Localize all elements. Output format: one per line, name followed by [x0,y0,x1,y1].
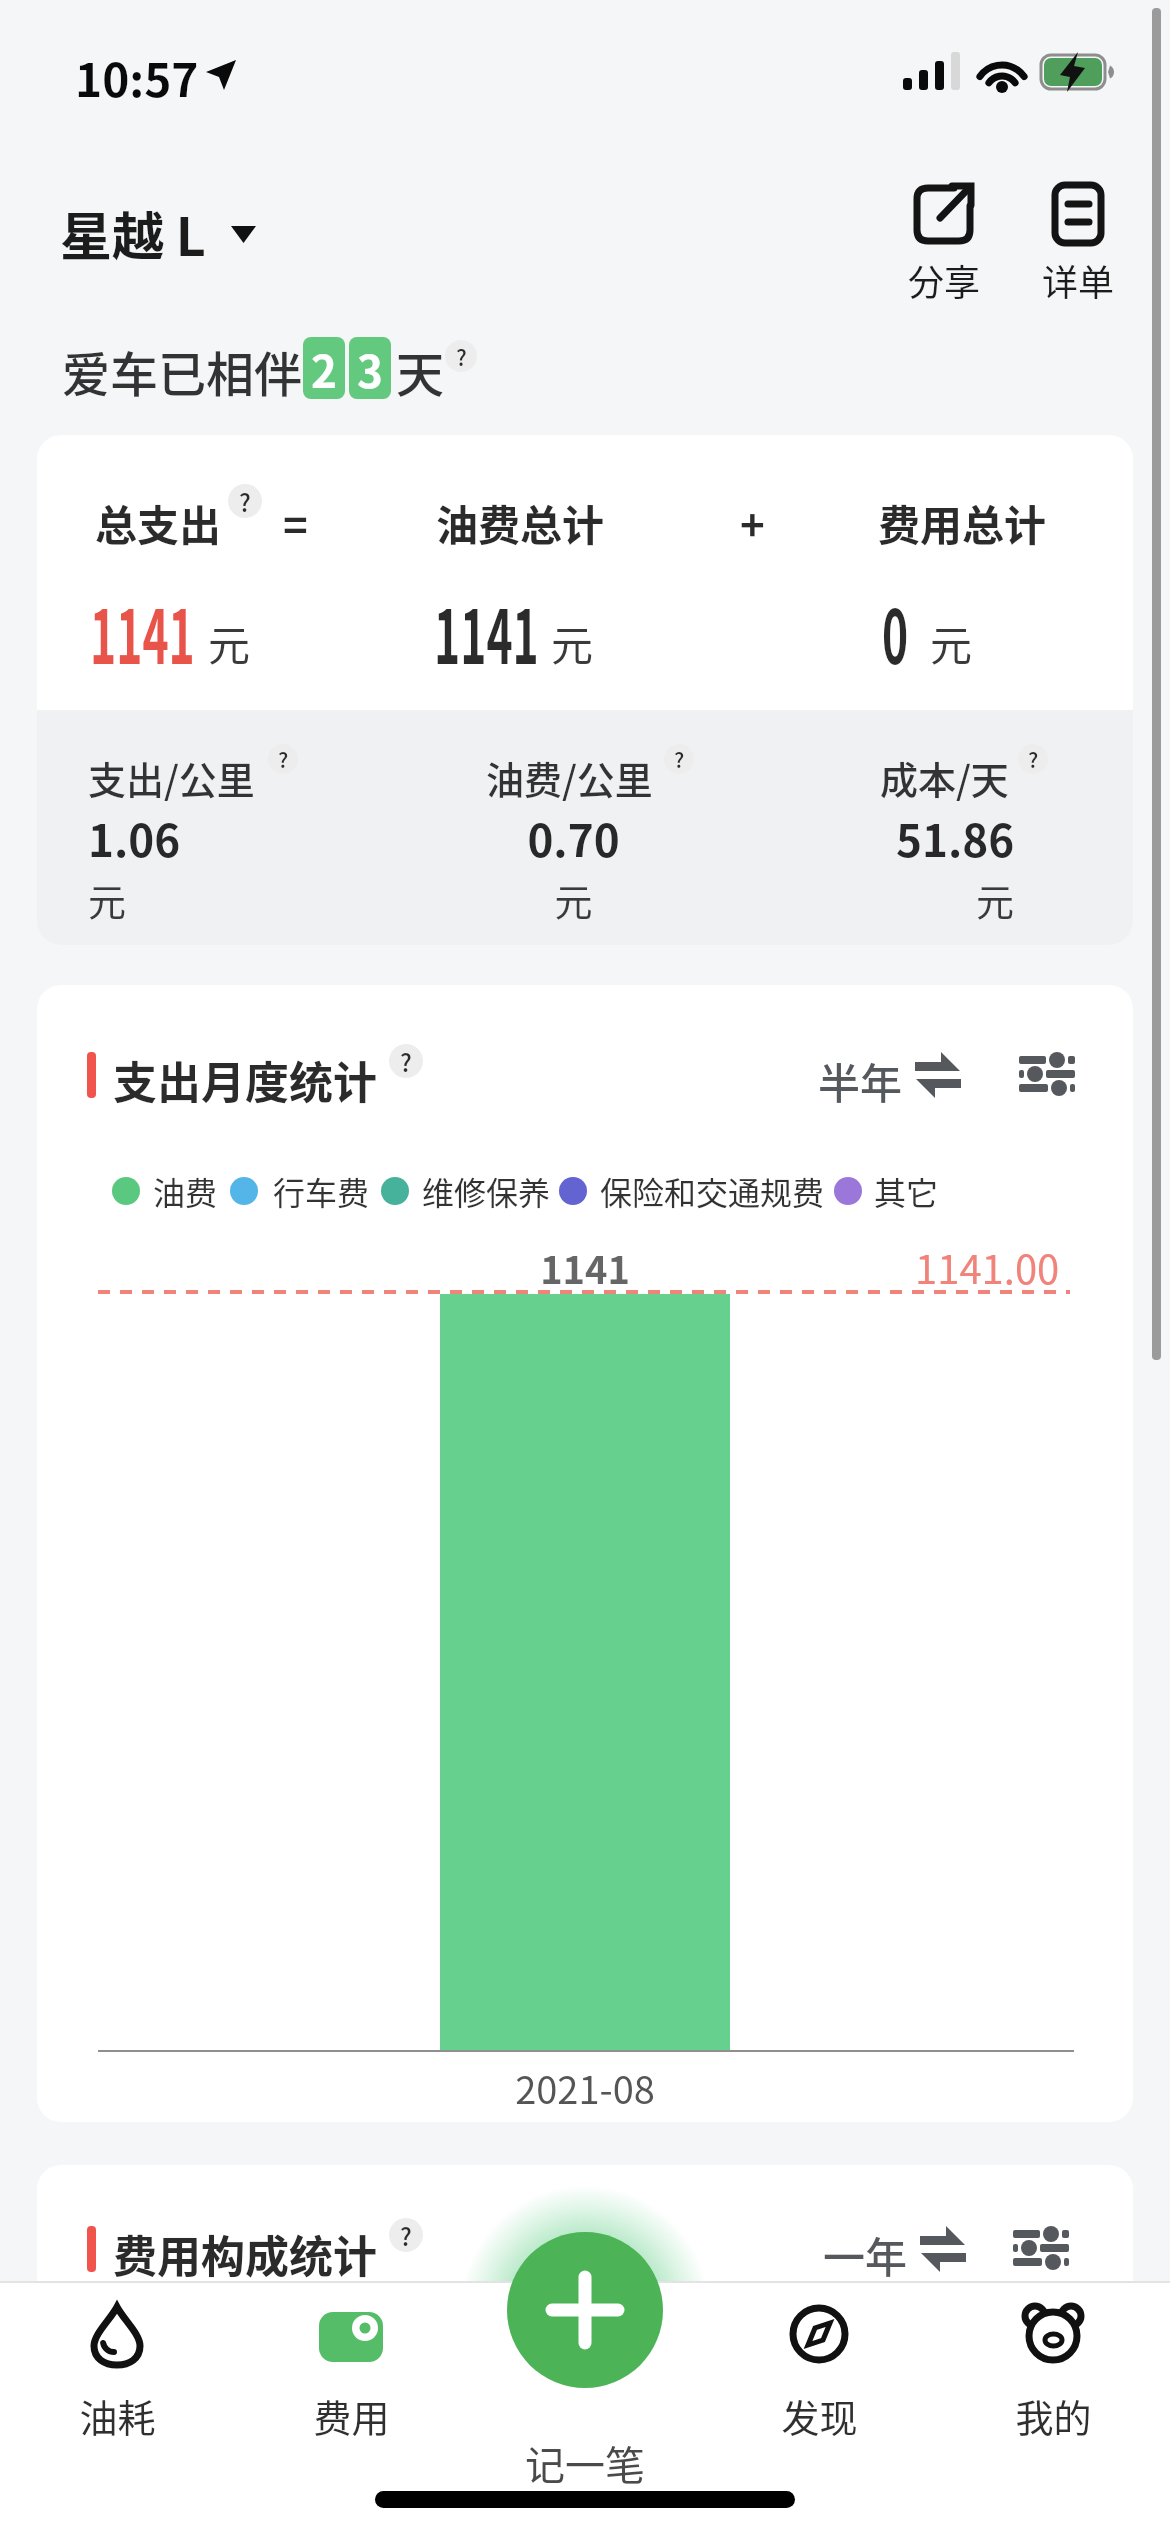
staticText: 元 [930,612,973,673]
staticText: 油费总计 [436,492,605,553]
staticText: + [740,492,765,553]
staticText: 费用 [313,2388,390,2443]
staticText: = [283,492,308,553]
button[interactable] [739,2290,899,2450]
staticText: 成本/天 [880,750,1009,805]
button[interactable]: 半年 [810,1040,970,1104]
staticText: 支出/公里 [88,750,255,805]
staticText: 0 [882,578,908,685]
staticText: 元 [88,872,127,927]
button[interactable]: 详单 [1032,180,1124,306]
button[interactable]: 一年 [815,2214,975,2278]
staticText: 费用总计 [878,492,1047,553]
staticText: 10:57 [75,44,199,111]
staticText: 元 [208,612,251,673]
staticText: 油耗 [79,2388,156,2443]
staticText: ? [278,744,289,774]
staticText: 星越 L [60,196,206,271]
staticText: 维修保养 [422,1168,551,1214]
staticText: 支出月度统计 [113,1048,377,1112]
staticText: 一年 [823,2224,908,2285]
staticText: ? [456,340,467,372]
button[interactable]: 分享 [898,180,990,306]
staticText: 1141 [540,1240,630,1295]
staticText: 元 [976,872,1015,927]
button[interactable] [507,2232,663,2388]
staticText: ? [400,1044,412,1078]
staticText: ? [674,744,685,774]
staticText: ? [1028,744,1039,774]
staticText: ? [400,2218,412,2252]
staticText: 1141 [434,578,539,685]
staticText: 1141 [90,578,195,685]
button[interactable] [271,2290,431,2450]
staticText: 爱车已相伴 [62,336,303,406]
staticText: 2 [311,337,337,399]
button[interactable] [1016,1046,1080,1102]
staticText: 油费 [153,1168,218,1214]
staticText: 行车费 [273,1168,370,1214]
staticText: 2021-08 [515,2060,655,2115]
staticText: 0.70 [527,806,620,870]
staticText: 元 [551,612,594,673]
staticText: 3 [357,337,383,399]
button[interactable] [973,2290,1133,2450]
button[interactable] [37,2290,197,2450]
staticText: 其它 [874,1168,939,1214]
staticText: 1141.00 [915,1238,1060,1296]
staticText: 我的 [1015,2388,1092,2443]
staticText: 天 [396,336,445,406]
staticText: 费用构成统计 [113,2222,377,2286]
staticText: 记一笔 [525,2434,645,2492]
staticText: 发现 [781,2388,858,2443]
staticText: 51.86 [896,806,1015,870]
staticText: 详单 [1042,254,1115,306]
button[interactable] [1010,2220,1074,2276]
staticText: 保险和交通规费 [600,1168,825,1214]
staticText: 半年 [818,1050,903,1111]
staticText: 分享 [908,254,981,306]
staticText: 1.06 [88,806,181,870]
staticText: ? [239,484,251,518]
staticText: 油费/公里 [486,750,653,805]
staticText: 元 [554,872,593,927]
button[interactable]: 星越 L [60,196,257,271]
staticText: 总支出 [95,492,222,553]
